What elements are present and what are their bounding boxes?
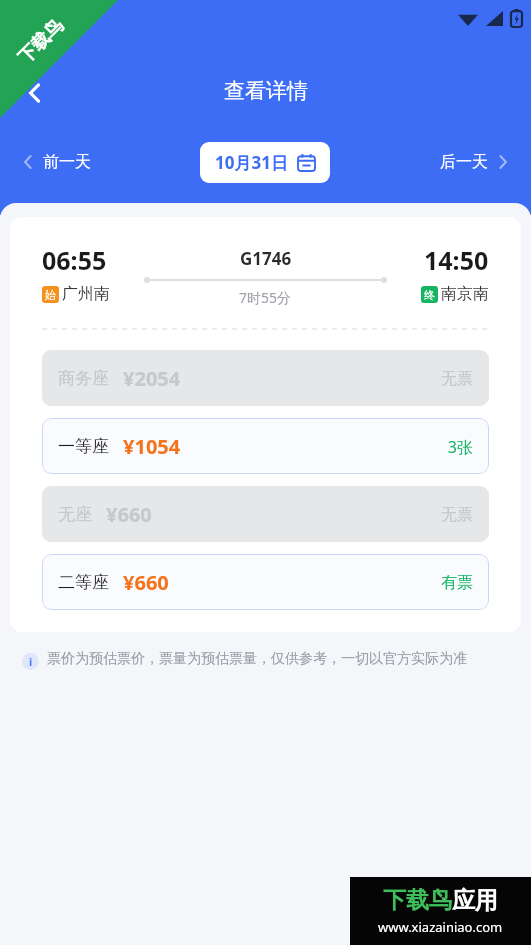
staticText: 7时55分 xyxy=(239,288,292,307)
button[interactable]: 一等座 xyxy=(42,418,489,474)
staticText: 06:55 xyxy=(42,243,107,277)
staticText: i xyxy=(29,654,33,669)
staticText: 终 xyxy=(424,288,435,302)
button[interactable]: Back xyxy=(12,70,58,116)
staticText: 查看详情 xyxy=(224,78,308,104)
staticText: 3张 xyxy=(447,436,473,458)
staticText: 始 xyxy=(45,288,56,302)
staticText: www.xiazainiao.com xyxy=(378,918,503,936)
staticText: ¥2054 xyxy=(123,365,181,392)
button[interactable]: 后一天 xyxy=(434,146,515,178)
button[interactable]: 前一天 xyxy=(16,146,97,178)
staticText: 下载鸟 xyxy=(14,14,68,69)
button[interactable]: 无座 xyxy=(42,486,489,542)
staticText: ¥660 xyxy=(123,569,169,596)
staticText: G1746 xyxy=(240,247,292,270)
staticText: 南京南 xyxy=(441,284,489,304)
staticText: 应用 xyxy=(452,886,498,915)
staticText: 10月31日 xyxy=(215,151,288,174)
button[interactable]: 商务座 xyxy=(42,350,489,406)
staticText: 无座 xyxy=(58,504,92,525)
staticText: 二等座 xyxy=(58,572,109,593)
staticText: 前一天 xyxy=(43,152,91,172)
staticText: 14:50 xyxy=(424,243,489,277)
staticText: 有票 xyxy=(441,573,473,593)
staticText: ¥1054 xyxy=(123,433,181,460)
button[interactable]: 二等座 xyxy=(42,554,489,610)
staticText: 无票 xyxy=(441,369,473,389)
staticText: 无票 xyxy=(441,505,473,525)
staticText: 广州南 xyxy=(62,284,110,304)
staticText: 后一天 xyxy=(440,152,488,172)
staticText: ¥660 xyxy=(106,501,152,528)
staticText: 票价为预估票价，票量为预估票量，仅供参考，一切以官方实际为准 xyxy=(47,650,467,668)
staticText: 下载鸟 xyxy=(383,886,452,915)
staticText: 一等座 xyxy=(58,436,109,457)
staticText: 商务座 xyxy=(58,368,109,389)
button[interactable]: 10月31日 xyxy=(200,142,330,183)
